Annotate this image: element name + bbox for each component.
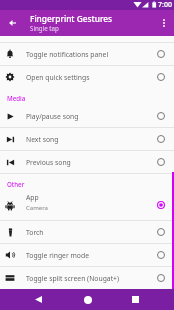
staticText: Torch [26, 228, 44, 237]
staticText: Other [7, 180, 25, 188]
button[interactable]: Toggle ringer mode [0, 244, 174, 266]
button[interactable]: Back [2, 13, 22, 33]
button[interactable]: Recent apps [125, 289, 146, 310]
staticText: App [26, 193, 39, 202]
button[interactable]: Previous song [0, 151, 174, 173]
staticText: Play/pause song [26, 112, 79, 121]
staticText: Media [7, 94, 26, 102]
button[interactable]: Next song [0, 128, 174, 150]
staticText: Fingerprint Gestures [30, 13, 113, 24]
button[interactable]: More options [154, 13, 174, 33]
button[interactable]: Torch [0, 221, 174, 243]
staticText: Toggle notifications panel [26, 50, 109, 59]
button[interactable]: Play/pause song [0, 105, 174, 127]
button[interactable]: Back [28, 289, 49, 310]
button[interactable]: Toggle split screen (Nougat+) [0, 267, 174, 289]
staticText: Toggle split screen (Nougat+) [26, 274, 120, 283]
staticText: Previous song [26, 158, 71, 167]
staticText: Next song [26, 135, 59, 144]
staticText: Open quick settings [26, 73, 90, 82]
button[interactable]: App [0, 191, 174, 220]
staticText: Toggle ringer mode [26, 251, 89, 260]
staticText: Single tap [30, 24, 59, 32]
staticText: 7:00 [158, 0, 172, 10]
button[interactable]: Open quick settings [0, 66, 174, 88]
button[interactable]: Home [77, 289, 98, 310]
staticText: Camera [26, 204, 48, 212]
button[interactable]: Toggle notifications panel [0, 43, 174, 65]
